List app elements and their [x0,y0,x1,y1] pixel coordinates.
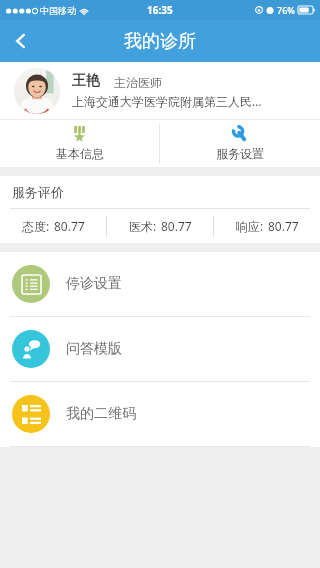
staticText: 中国移动 [40,5,76,16]
staticText: 服务设置 [216,146,264,161]
staticText: 我的诊所 [124,30,196,53]
staticText: 王艳 [72,72,100,90]
button[interactable]: 王艳 [0,62,320,119]
button[interactable]: 基本信息 [0,120,159,167]
staticText: 服务评价 [12,184,64,200]
button[interactable]: Back [0,20,42,62]
staticText: 问答模版 [66,340,122,358]
staticText: 医术: [129,218,157,234]
staticText: 态度: [22,218,50,234]
staticText: 上海交通大学医学院附属第三人民… [72,93,262,109]
staticText: 响应: [236,218,264,234]
staticText: 我的二维码 [66,405,136,423]
staticText: 80.77 [268,218,299,234]
button[interactable]: 服务设置 [160,120,320,167]
staticText: 76% [277,4,295,16]
staticText: 基本信息 [56,146,104,161]
button[interactable]: 问答模版 [0,317,320,381]
button[interactable]: 我的二维码 [0,382,320,446]
staticText: 停诊设置 [66,275,122,293]
button[interactable]: 停诊设置 [0,252,320,316]
staticText: 主治医师 [114,75,162,90]
staticText: 80.77 [54,218,85,234]
staticText: 16:35 [147,3,173,17]
staticText: 80.77 [161,218,192,234]
